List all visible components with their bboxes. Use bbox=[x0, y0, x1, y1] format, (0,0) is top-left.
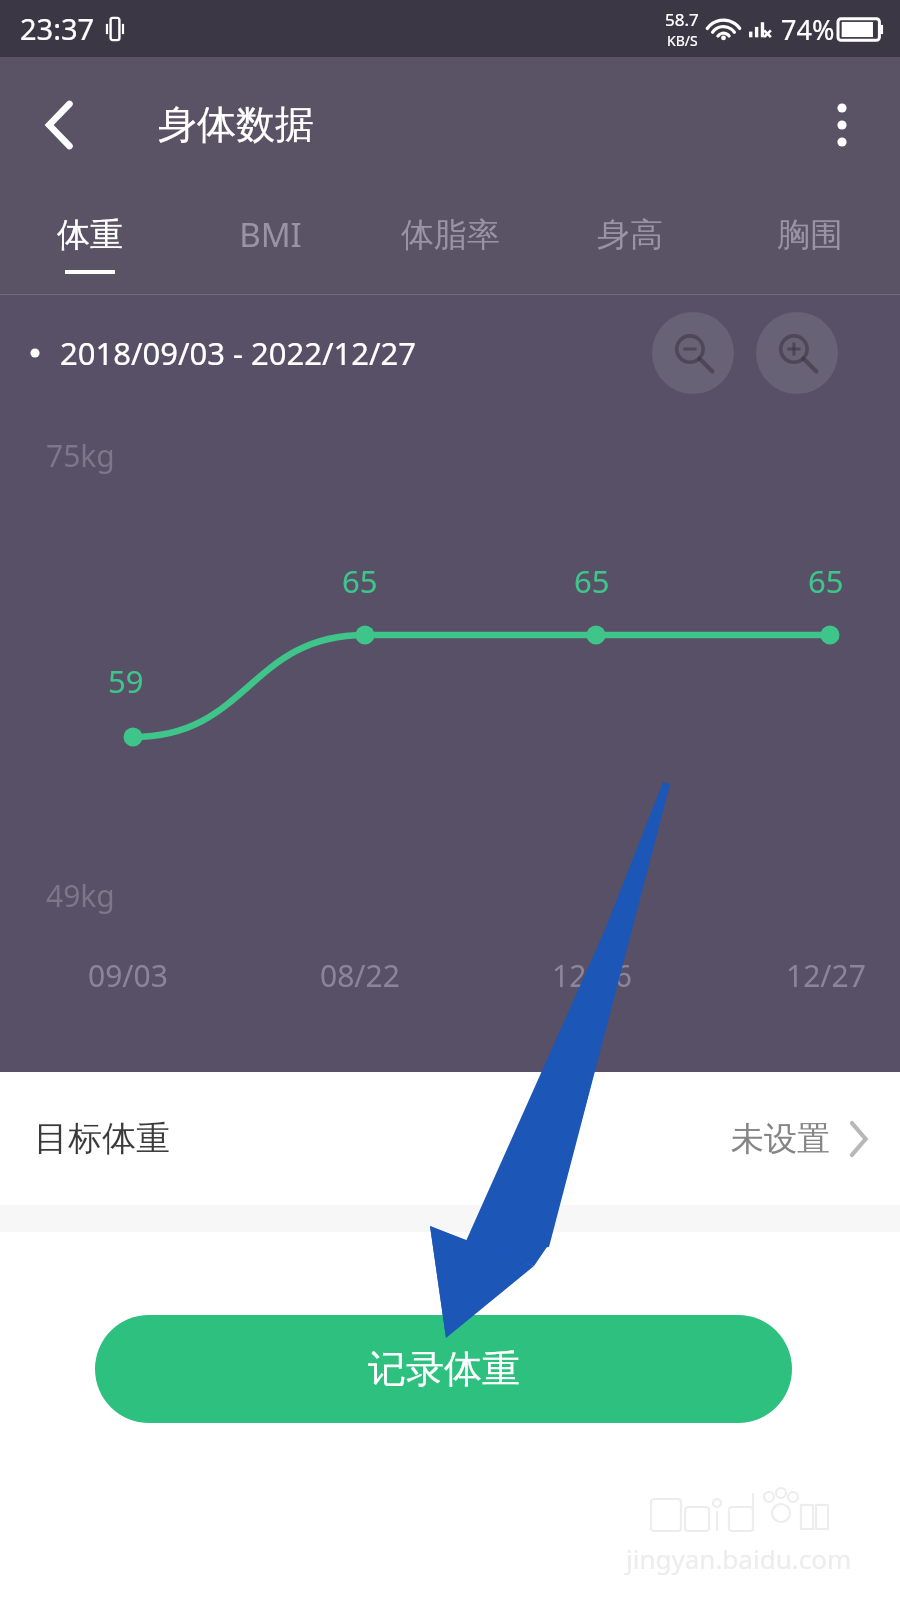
staticText: 65 bbox=[808, 560, 844, 602]
staticText: 身体数据 bbox=[158, 100, 314, 149]
button[interactable]: 胸围 bbox=[720, 192, 900, 295]
staticText: 目标体重 bbox=[34, 1117, 170, 1160]
staticText: 2018/09/03 - 2022/12/27 bbox=[60, 332, 416, 374]
staticText: jingyan.baidu.com bbox=[626, 1541, 852, 1576]
staticText: 记录体重 bbox=[368, 1345, 520, 1393]
staticText: 身高 bbox=[597, 214, 663, 256]
staticText: 体重 bbox=[57, 214, 123, 256]
staticText: 59 bbox=[108, 660, 144, 702]
button[interactable]: Zoom out bbox=[652, 312, 734, 394]
button[interactable]: 目标体重 bbox=[0, 1072, 900, 1205]
staticText: 74% bbox=[781, 11, 835, 48]
staticText: BMI bbox=[239, 212, 302, 257]
staticText: 12/26 bbox=[552, 955, 632, 996]
staticText: 49kg bbox=[46, 875, 115, 916]
staticText: 09/03 bbox=[88, 955, 168, 996]
staticText: 12/27 bbox=[786, 955, 866, 996]
button[interactable]: 体重 bbox=[0, 192, 180, 295]
staticText: 23:37 bbox=[20, 9, 95, 48]
staticText: 未设置 bbox=[731, 1118, 830, 1160]
button[interactable]: Zoom in bbox=[756, 312, 838, 394]
staticText: KB/S bbox=[667, 31, 698, 50]
button[interactable]: Back bbox=[22, 87, 98, 163]
button[interactable]: More options bbox=[804, 87, 880, 163]
staticText: 65 bbox=[574, 560, 610, 602]
staticText: 75kg bbox=[46, 435, 115, 476]
button[interactable]: 身高 bbox=[540, 192, 720, 295]
staticText: 58.7 bbox=[665, 8, 699, 31]
staticText: 65 bbox=[342, 560, 378, 602]
button[interactable]: BMI bbox=[180, 192, 360, 295]
staticText: 胸围 bbox=[777, 214, 843, 256]
button[interactable]: 体脂率 bbox=[360, 192, 540, 295]
button[interactable]: 记录体重 bbox=[95, 1315, 792, 1423]
staticText: 08/22 bbox=[320, 955, 400, 996]
staticText: 体脂率 bbox=[401, 214, 500, 256]
